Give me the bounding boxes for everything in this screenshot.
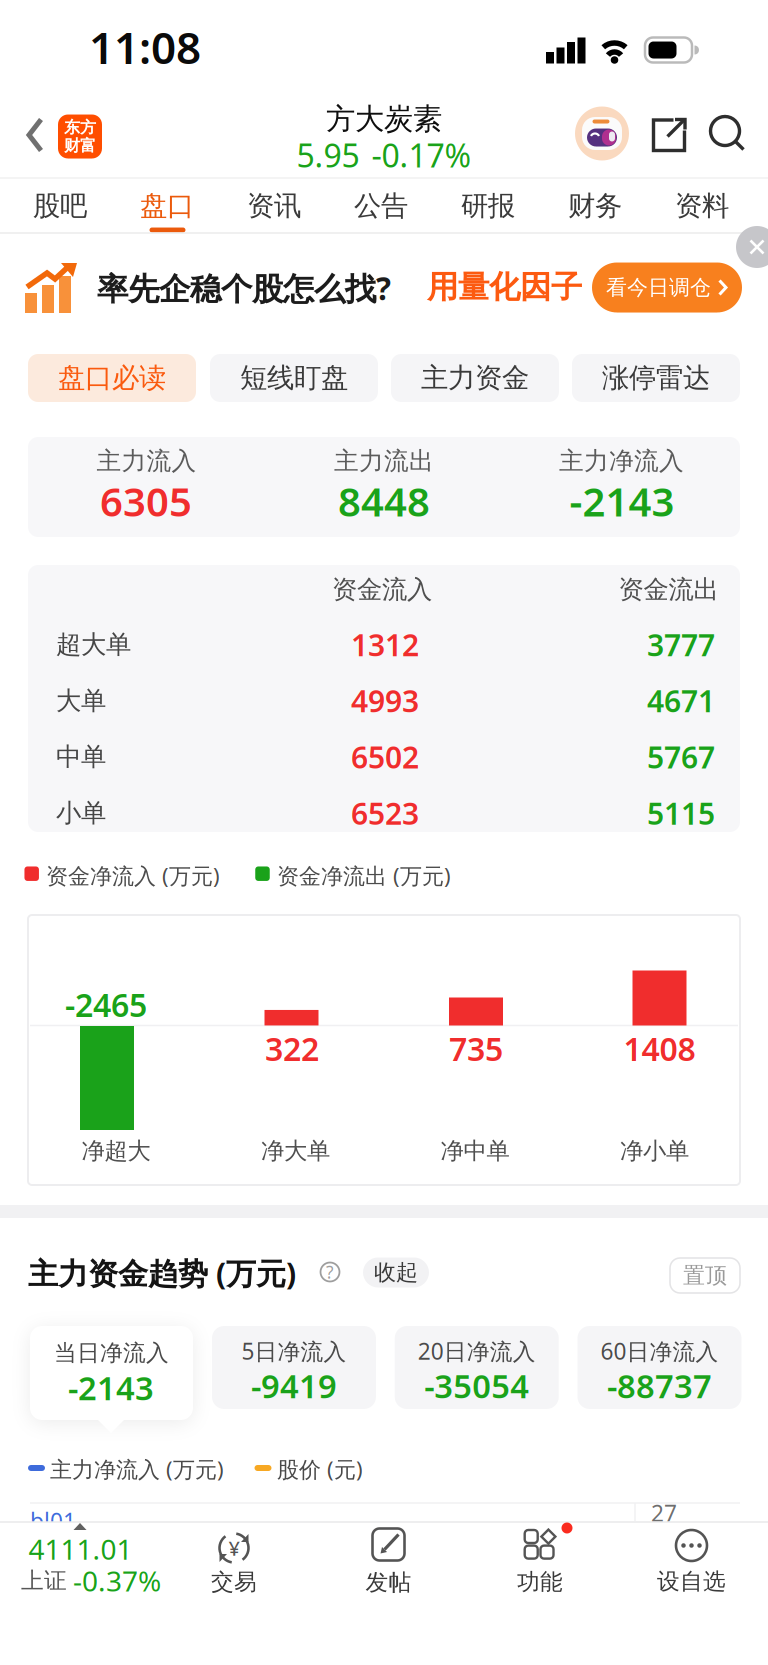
button[interactable]: ¥	[207, 1521, 261, 1597]
staticText: 5115	[647, 793, 715, 834]
button[interactable]: Share	[651, 117, 687, 153]
staticText: -2143	[68, 1365, 154, 1410]
staticText: 3777	[647, 624, 715, 665]
staticText: 看今日调仓	[606, 274, 711, 301]
staticText: 盘口	[140, 189, 194, 223]
button[interactable]: 设自选	[660, 1521, 722, 1597]
staticText: 公告	[354, 189, 408, 223]
button[interactable]: 主力资金	[391, 354, 559, 402]
button[interactable]: Close	[736, 226, 768, 268]
button[interactable]: 看今日调仓	[592, 262, 742, 312]
button[interactable]: 股吧	[33, 189, 87, 223]
staticText: 研报	[461, 189, 515, 223]
staticText: 20日净流入	[418, 1336, 536, 1366]
staticText: 主力资金	[421, 361, 529, 395]
staticText: 5767	[647, 736, 715, 777]
staticText: 322	[265, 1027, 319, 1070]
button[interactable]: 资讯	[247, 189, 301, 223]
staticText: -88737	[607, 1363, 712, 1408]
staticText: 净中单	[440, 1136, 509, 1166]
staticText: 超大单	[56, 628, 131, 660]
staticText: 交易	[211, 1568, 257, 1596]
button[interactable]: 资料	[675, 189, 729, 223]
button[interactable]: 发帖	[361, 1521, 415, 1597]
button[interactable]: 5日净流入	[212, 1326, 376, 1409]
staticText: 资金净流出 (万元)	[277, 860, 451, 890]
staticText: 735	[449, 1027, 503, 1070]
staticText: 方大炭素	[326, 100, 442, 137]
staticText: 小单	[56, 797, 106, 829]
staticText: 短线盯盘	[240, 361, 348, 395]
staticText: 净大单	[261, 1136, 330, 1166]
button[interactable]: Search	[710, 116, 745, 151]
button[interactable]: 财务	[568, 189, 622, 223]
button[interactable]: 盘口	[140, 189, 194, 223]
staticText: -35054	[424, 1363, 529, 1408]
staticText: 8448	[338, 474, 430, 528]
button[interactable]: 20日净流入	[395, 1326, 559, 1409]
button[interactable]: 当日净流入	[30, 1326, 193, 1420]
staticText: 置顶	[683, 1262, 727, 1289]
button[interactable]: 短线盯盘	[210, 354, 378, 402]
staticText: 净超大	[81, 1136, 150, 1166]
staticText: 大单	[56, 685, 106, 717]
staticText: 4671	[647, 680, 715, 721]
staticText: 资金流出	[618, 573, 718, 605]
staticText: 东方	[64, 117, 96, 137]
staticText: 资料	[675, 189, 729, 223]
staticText: -2143	[569, 474, 674, 528]
staticText: 设自选	[657, 1567, 726, 1596]
staticText: -0.37%	[73, 1561, 161, 1600]
staticText: 股价 (元)	[277, 1454, 363, 1484]
staticText: 主力流出	[334, 445, 434, 477]
staticText: 27	[651, 1498, 677, 1528]
button[interactable]: 4111.01	[0, 1521, 185, 1611]
staticText: bl01	[30, 1506, 76, 1536]
staticText: -2465	[65, 983, 147, 1026]
staticText: 11:08	[89, 17, 201, 77]
button[interactable]: Back	[27, 117, 43, 152]
button[interactable]: 60日净流入	[577, 1326, 741, 1409]
staticText: ?	[326, 1260, 334, 1284]
staticText: 4993	[351, 680, 419, 721]
staticText: 上证	[21, 1566, 67, 1595]
staticText: 财务	[568, 189, 622, 223]
staticText: 资讯	[247, 189, 301, 223]
button[interactable]: 收起	[363, 1257, 429, 1287]
button[interactable]: 智能助手	[575, 106, 629, 160]
staticText: -9419	[251, 1363, 337, 1408]
staticText: 主力净流入	[559, 445, 684, 477]
staticText: 5.95	[296, 133, 359, 177]
staticText: 净小单	[620, 1136, 689, 1166]
staticText: 60日净流入	[600, 1336, 718, 1366]
staticText: 资金流入	[332, 573, 432, 605]
staticText: 6305	[100, 474, 192, 528]
staticText: 盘口必读	[58, 361, 166, 395]
staticText: 资金净流入 (万元)	[46, 860, 220, 890]
staticText: 主力净流入 (万元)	[50, 1454, 224, 1484]
staticText: 主力资金趋势 (万元)	[28, 1253, 296, 1293]
button[interactable]: 研报	[461, 189, 515, 223]
staticText: 发帖	[365, 1568, 411, 1597]
staticText: 1312	[351, 624, 419, 665]
staticText: 5日净流入	[241, 1336, 346, 1366]
staticText: 功能	[517, 1568, 563, 1596]
staticText: 收起	[374, 1259, 418, 1286]
staticText: ¥	[228, 1534, 239, 1562]
button[interactable]: 涨停雷达	[572, 354, 740, 402]
staticText: 4111.01	[29, 1530, 133, 1568]
button[interactable]: 盘口必读	[28, 354, 196, 402]
staticText: 当日净流入	[54, 1339, 169, 1367]
button[interactable]: 功能	[513, 1521, 567, 1597]
staticText: 涨停雷达	[602, 361, 710, 395]
button[interactable]: 置顶	[670, 1258, 740, 1293]
button[interactable]: 公告	[354, 189, 408, 223]
button[interactable]: 率先企稳个股怎么找?	[0, 0, 768, 360]
staticText: 率先企稳个股怎么找?	[97, 267, 391, 309]
staticText: 1408	[623, 1027, 695, 1070]
staticText: 6523	[351, 793, 419, 834]
staticText: -0.17%	[371, 133, 471, 177]
staticText: 主力流入	[96, 445, 196, 477]
staticText: 中单	[56, 741, 106, 773]
button[interactable]: 东方财富	[58, 114, 102, 158]
